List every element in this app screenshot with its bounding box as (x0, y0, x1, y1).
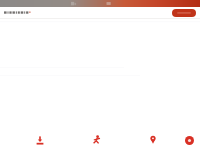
button[interactable]: Add (185, 136, 194, 145)
button[interactable]: Home (4, 10, 27, 15)
button[interactable]: Location (146, 133, 160, 147)
button[interactable]: Sign up (172, 9, 196, 17)
button[interactable]: Activity (90, 133, 104, 147)
button[interactable]: Download (33, 133, 47, 147)
